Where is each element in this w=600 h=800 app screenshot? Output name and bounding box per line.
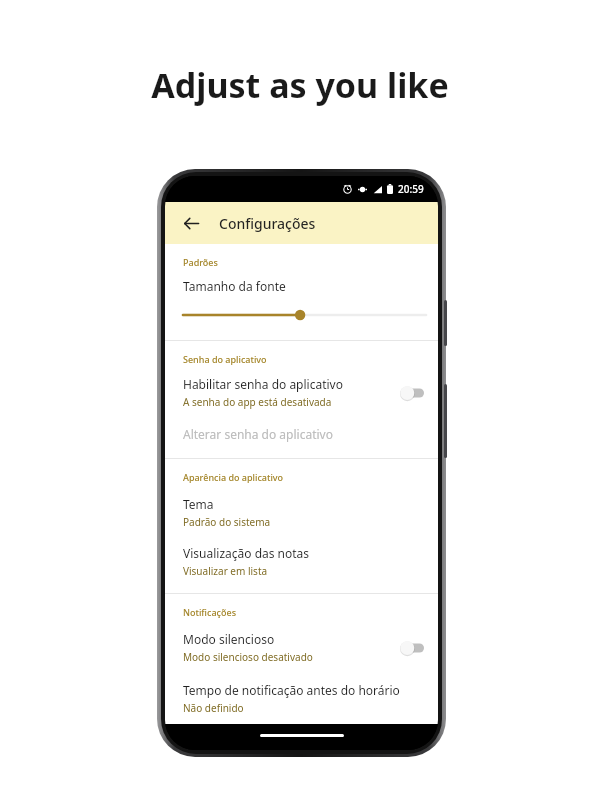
staticText: 20:59 (398, 182, 424, 196)
staticText: Habilitar senha do aplicativo (183, 376, 343, 392)
button[interactable]: Habilitar senha do aplicativo (165, 375, 438, 410)
staticText: Padrão do sistema (183, 515, 271, 529)
button[interactable]: Tema (165, 495, 438, 530)
staticText: Modo silencioso desativado (183, 650, 313, 664)
staticText: Alterar senha do aplicativo (183, 426, 333, 442)
staticText: Aparência do aplicativo (183, 471, 284, 483)
button[interactable]: Modo silencioso (165, 630, 438, 665)
staticText: Modo silencioso (183, 631, 275, 647)
button[interactable]: Toggle (394, 384, 424, 402)
button[interactable]: Visualização das notas (165, 544, 438, 579)
staticText: Tamanho da fonte (183, 278, 286, 294)
button[interactable]: Font size slider (165, 306, 438, 324)
staticText: Não definido (183, 701, 244, 715)
button[interactable]: Toggle (394, 639, 424, 657)
staticText: Tempo de notificação antes do horário (183, 682, 400, 698)
staticText: Visualizar em lista (183, 564, 268, 578)
staticText: A senha do app está desativada (183, 395, 332, 409)
button[interactable]: Alterar senha do aplicativo (165, 424, 438, 444)
staticText: Senha do aplicativo (183, 353, 267, 365)
staticText: Configurações (219, 214, 316, 233)
staticText: Visualização das notas (183, 545, 310, 561)
staticText: Tema (183, 496, 214, 512)
button[interactable]: Tamanho da fonte (165, 278, 438, 324)
staticText: Adjust as you like (0, 62, 600, 108)
staticText: Notificações (183, 606, 237, 618)
staticText: Padrões (183, 256, 218, 268)
button[interactable]: Back (175, 207, 207, 239)
button[interactable]: Tempo de notificação antes do horário (165, 681, 438, 716)
